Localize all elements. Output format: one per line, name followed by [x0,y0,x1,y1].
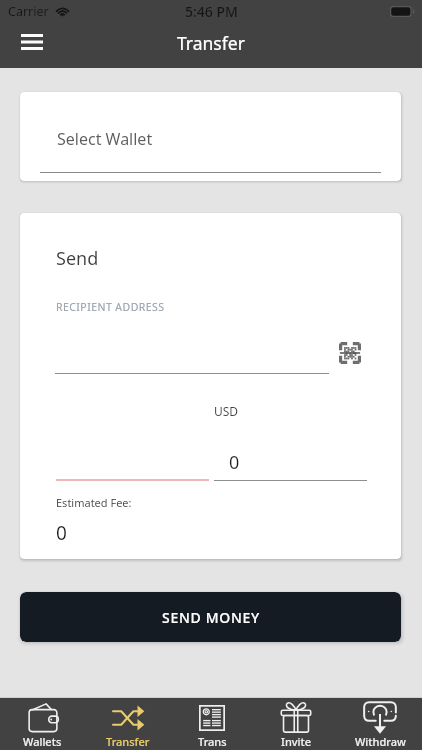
staticText: Withdraw [355,734,406,749]
staticText: Transfer [106,734,150,749]
staticText: RECIPIENT ADDRESS [56,300,165,314]
staticText: SEND MONEY [162,608,260,627]
staticText: Transfer [177,31,245,55]
staticText: 0 [229,450,240,475]
staticText: Wallets [23,734,62,749]
staticText: Select Wallet [57,128,153,150]
button[interactable]: Scan QR code [339,342,361,364]
staticText: Send [56,246,99,271]
button[interactable]: Select Wallet [20,92,401,181]
button[interactable]: Withdraw [338,698,422,750]
button[interactable]: Invite [254,698,338,750]
button[interactable]: Open navigation menu [11,21,53,63]
staticText: USD [214,403,239,419]
button[interactable]: Trans [170,698,254,750]
staticText: 0 [56,520,67,546]
staticText: Invite [281,734,312,749]
button[interactable]: Transfer [85,698,170,750]
staticText: 5:46 PM [185,2,238,21]
button[interactable]: Wallets [0,698,85,750]
staticText: Carrier [8,3,49,20]
staticText: Trans [198,734,227,749]
button[interactable]: SEND MONEY [20,592,401,642]
staticText: Estimated Fee: [56,495,132,510]
